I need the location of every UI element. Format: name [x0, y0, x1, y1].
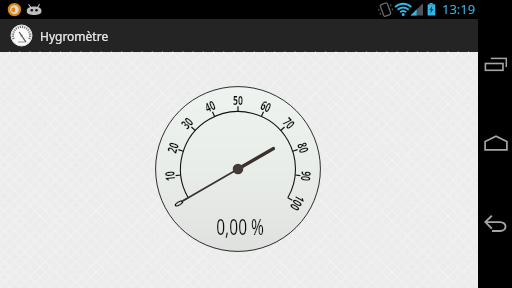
button[interactable]: Recent apps [478, 49, 512, 83]
button[interactable]: Hygromètre [0, 19, 478, 52]
button[interactable]: Back [478, 205, 512, 239]
staticText: Hygromètre [40, 28, 109, 44]
button[interactable]: Home [478, 126, 512, 160]
